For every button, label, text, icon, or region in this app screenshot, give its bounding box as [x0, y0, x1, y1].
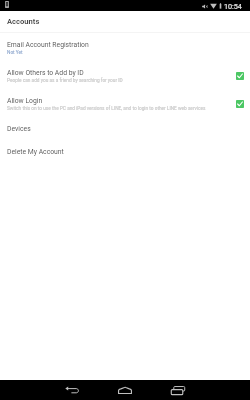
button[interactable]: Home — [109, 380, 141, 400]
staticText: Accounts — [7, 17, 40, 26]
button[interactable]: Recent apps — [162, 380, 194, 400]
staticText: 10:54 — [224, 2, 242, 10]
staticText: Devices — [7, 125, 31, 133]
button[interactable]: Devices — [0, 117, 250, 140]
button[interactable]: Email Account Registration — [0, 33, 250, 61]
other: Toggle Allow Login — [236, 100, 244, 108]
button[interactable]: Back — [56, 380, 88, 400]
button[interactable]: Delete My Account — [0, 140, 250, 163]
staticText: Not Yet — [7, 50, 23, 56]
staticText: Email Account Registration — [7, 41, 89, 49]
button[interactable]: Allow Others to Add by ID — [0, 61, 250, 89]
staticText: Allow Login — [7, 97, 43, 105]
staticText: Allow Others to Add by ID — [7, 69, 84, 77]
staticText: Delete My Account — [7, 148, 64, 156]
other: Toggle Allow Others to Add by ID — [236, 72, 244, 80]
staticText: Switch this on to use the PC and iPad ve… — [7, 106, 206, 112]
button[interactable]: Allow Login — [0, 89, 250, 117]
staticText: People can add you as a friend by search… — [7, 78, 123, 84]
